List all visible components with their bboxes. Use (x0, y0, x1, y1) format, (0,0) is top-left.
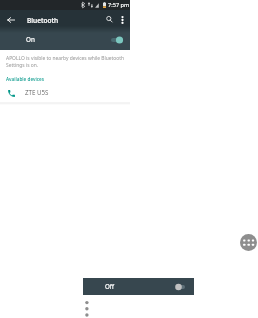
staticText: Bluetooth (27, 16, 59, 25)
button[interactable]: Off (83, 278, 194, 295)
staticText: ZTE U5S (25, 88, 49, 96)
button[interactable]: ZTE U5S (0, 85, 130, 99)
staticText: Off (105, 282, 115, 290)
button[interactable]: More options (82, 297, 92, 318)
button[interactable]: Back (2, 10, 20, 30)
staticText: 7:57 pm (108, 1, 130, 9)
staticText: APOLLO is visible to nearby devices whil… (6, 55, 130, 68)
button[interactable]: Apps (240, 234, 257, 251)
staticText: Available devices (6, 76, 45, 82)
button[interactable]: On (0, 30, 130, 50)
button[interactable]: More options (114, 10, 130, 30)
button[interactable]: Search (101, 9, 117, 29)
staticText: On (26, 35, 35, 44)
